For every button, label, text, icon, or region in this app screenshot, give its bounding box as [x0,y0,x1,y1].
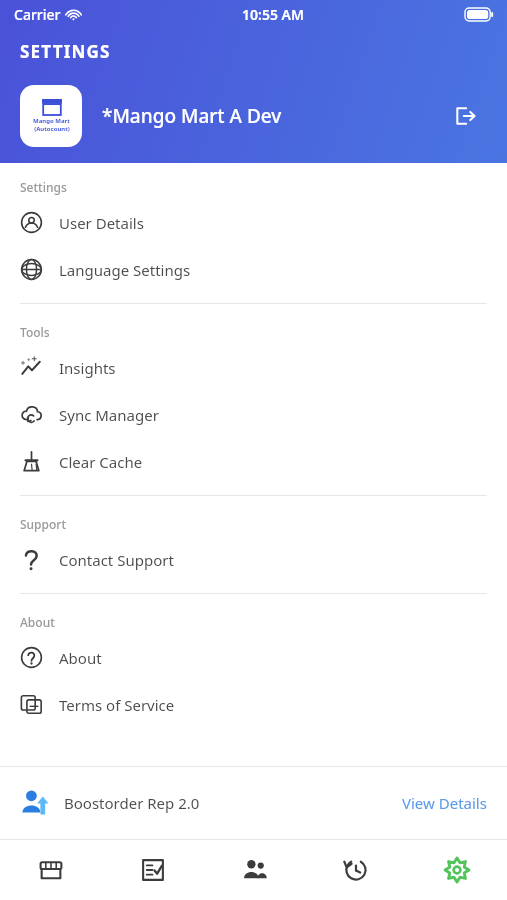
staticText: Support [20,516,67,532]
staticText: About [59,648,102,668]
button[interactable]: Language Settings [0,246,507,293]
staticText: View Details [402,793,487,813]
button[interactable]: Settings [406,840,507,900]
staticText: Contact Support [59,550,174,570]
staticText: Sync Manager [59,405,159,425]
button[interactable]: History [305,840,406,900]
staticText: *Mango Mart A Dev [102,103,282,129]
staticText: (Autocount) [34,125,70,133]
button[interactable]: Boostorder Rep 2.0 [0,767,507,839]
button[interactable]: Orders [102,840,204,900]
staticText: Boostorder Rep 2.0 [64,793,200,813]
staticText: Tools [20,324,50,340]
staticText: Insights [59,358,116,378]
staticText: About [20,614,55,630]
staticText: Clear Cache [59,452,143,472]
button[interactable]: Store [0,840,102,900]
button[interactable]: Contact Support [0,536,507,583]
staticText: SETTINGS [20,40,111,63]
button[interactable]: User Details [0,199,507,246]
staticText: 10:55 AM [242,5,304,24]
button[interactable]: Sync Manager [0,391,507,438]
button[interactable]: Clear Cache [0,438,507,485]
staticText: Language Settings [59,260,191,280]
button[interactable]: Customers [204,840,305,900]
button[interactable]: Insights [0,344,507,391]
staticText: Terms of Service [59,695,175,715]
staticText: Settings [20,179,67,195]
staticText: User Details [59,213,144,233]
button[interactable]: Terms of Service [0,681,507,728]
button[interactable]: About [0,634,507,681]
staticText: Mango Mart [33,117,70,125]
staticText: Carrier [14,5,61,24]
button[interactable]: Log out [443,94,487,138]
